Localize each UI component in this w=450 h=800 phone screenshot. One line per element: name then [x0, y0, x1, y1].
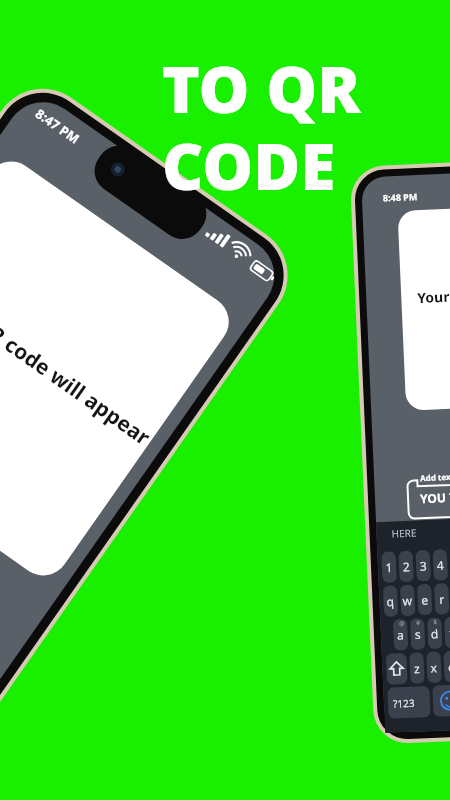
button[interactable]: Text to QR code promo screen: [0, 0, 450, 800]
